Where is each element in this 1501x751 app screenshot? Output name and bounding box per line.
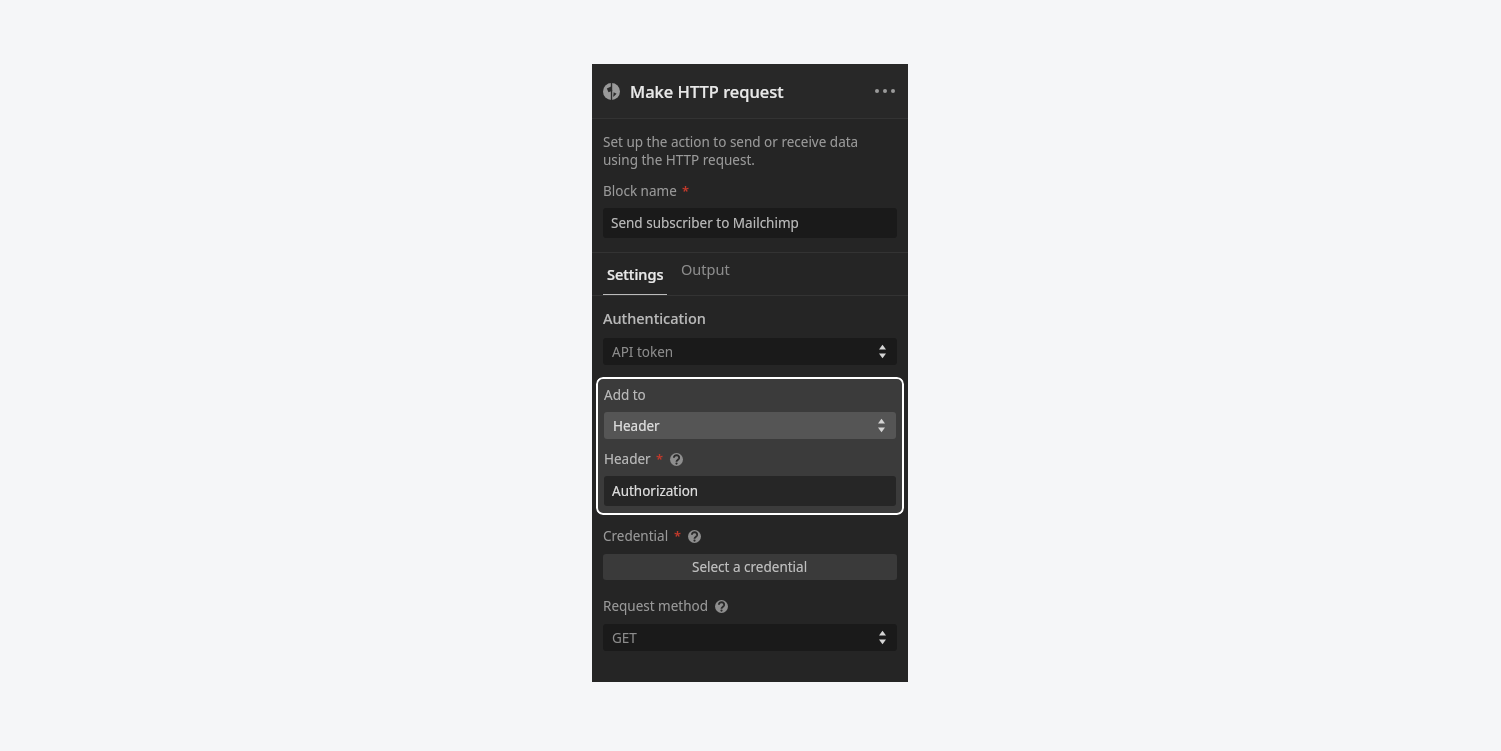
staticText: Request method [603,597,709,615]
staticText: Authorization [612,482,699,500]
button[interactable]: More options [870,76,900,106]
button[interactable]: Select a credential [603,554,897,580]
staticText: Authentication [603,308,706,328]
staticText: GET [612,629,637,647]
staticText: Settings [607,264,664,284]
button[interactable]: API token [603,338,897,365]
staticText: API token [612,343,674,361]
staticText: Output [681,259,730,279]
button[interactable]: Header [604,412,896,439]
staticText: Send subscriber to Mailchimp [611,214,799,232]
staticText: Make HTTP request [630,80,784,102]
staticText: Credential [603,527,669,545]
staticText: * [682,182,690,200]
button[interactable]: GET [603,624,897,651]
button[interactable]: Output [681,253,730,295]
staticText: Select a credential [692,558,808,576]
staticText: Block name [603,182,677,200]
button[interactable]: Settings [603,253,667,295]
staticText: Set up the action to send or receive dat… [603,133,859,169]
staticText: Add to [604,386,646,404]
staticText: * [656,450,664,468]
staticText: Header [604,450,651,468]
button[interactable]: Send subscriber to Mailchimp [603,208,897,238]
staticText: Header [613,417,660,435]
button[interactable]: Add to [596,377,904,515]
button[interactable]: Authorization [604,476,896,506]
staticText: * [674,527,682,545]
